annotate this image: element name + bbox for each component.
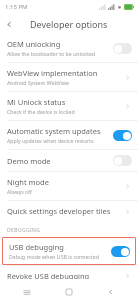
- button[interactable]: Quick settings developer tiles: [0, 201, 138, 221]
- staticText: Mi Unlock status: [7, 97, 66, 107]
- button[interactable]: Back: [0, 15, 18, 33]
- button[interactable]: Home: [54, 284, 84, 300]
- other: Open: [122, 271, 132, 279]
- staticText: OEM unlocking: [7, 39, 61, 49]
- button[interactable]: Back: [96, 284, 126, 300]
- button[interactable]: Automatic system updates: [0, 121, 138, 149]
- staticText: Android System WebView: [7, 79, 69, 86]
- staticText: USB debugging: [9, 242, 64, 252]
- button[interactable]: Revoke USB debugging authorizations: [0, 266, 138, 284]
- button[interactable]: Recents: [12, 284, 42, 300]
- staticText: Debug mode when USB is connected: [9, 253, 99, 260]
- staticText: DEBUGGING: [7, 227, 41, 234]
- button[interactable]: Mi Unlock status: [0, 92, 138, 120]
- button[interactable]: Toggle off: [113, 43, 132, 54]
- staticText: WebView implementation: [7, 68, 98, 78]
- staticText: Developer options: [30, 18, 108, 30]
- staticText: Quick settings developer tiles: [7, 206, 111, 216]
- staticText: Demo mode: [7, 156, 51, 166]
- other: Open: [122, 206, 132, 216]
- button[interactable]: Toggle off: [113, 155, 132, 166]
- staticText: Apply updates when device restarts: [7, 137, 94, 144]
- staticText: 1:15 PM: [5, 3, 28, 11]
- button[interactable]: WebView implementation: [0, 63, 138, 91]
- other: Open: [122, 72, 132, 82]
- staticText: Always off: [7, 188, 32, 195]
- button[interactable]: USB debugging: [2, 237, 136, 265]
- button[interactable]: Demo mode: [0, 150, 138, 171]
- other: Open: [122, 181, 132, 191]
- button[interactable]: Toggle on: [113, 130, 132, 141]
- other: Open: [122, 101, 132, 111]
- staticText: Automatic system updates: [7, 126, 101, 136]
- button[interactable]: Night mode: [0, 172, 138, 200]
- staticText: Night mode: [7, 177, 49, 187]
- staticText: Check if the device is locked: [7, 108, 75, 115]
- staticText: Revoke USB debugging authorizations: [7, 271, 118, 279]
- staticText: Allow the bootloader to be unlocked: [7, 50, 96, 57]
- button[interactable]: OEM unlocking: [0, 34, 138, 62]
- button[interactable]: Toggle on: [111, 246, 130, 257]
